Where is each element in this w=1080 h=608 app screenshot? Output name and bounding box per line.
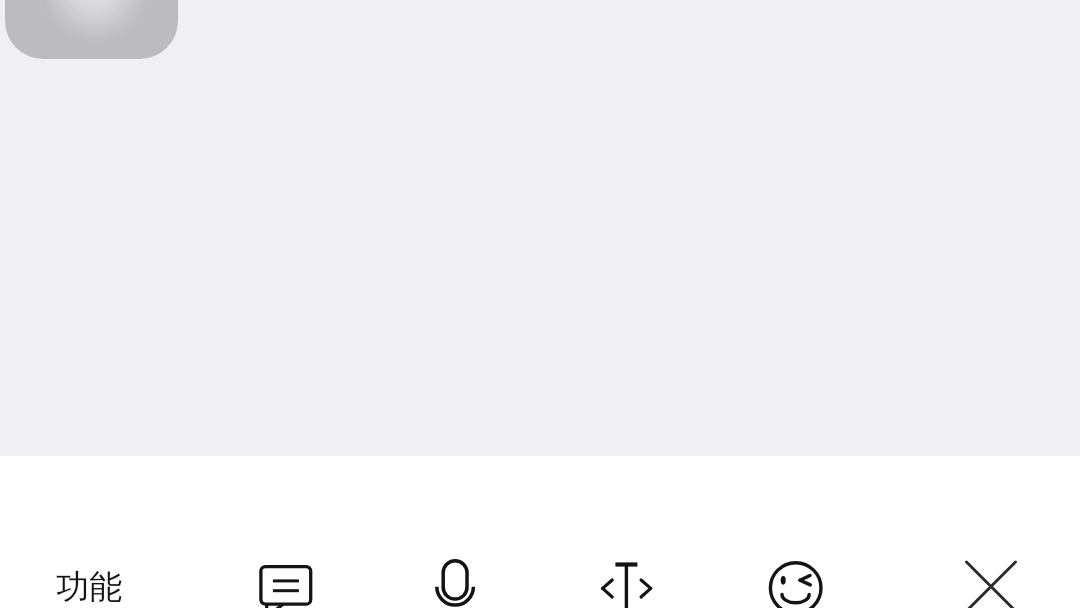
button[interactable]: Voice message [425, 554, 485, 608]
staticText: 功能 [56, 566, 122, 608]
button[interactable]: 功能 [30, 546, 146, 604]
button[interactable]: Close [962, 556, 1020, 608]
button[interactable]: Emoji [768, 554, 826, 608]
button[interactable]: Profile photo [5, 0, 178, 59]
button[interactable]: Rich text [596, 556, 660, 608]
button[interactable]: Keyboard [246, 554, 328, 608]
